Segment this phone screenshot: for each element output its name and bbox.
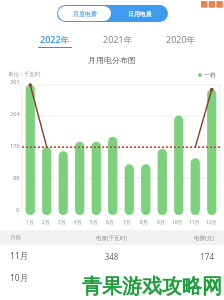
staticText [73, 273, 150, 284]
staticText: 单位：千瓦时 [8, 71, 41, 78]
button[interactable]: 10月 [0, 267, 224, 289]
staticText: 2月 [42, 219, 50, 226]
staticText: 青果游戏攻略网 [82, 274, 222, 299]
staticText: 11月 [189, 219, 200, 226]
staticText [150, 273, 214, 284]
staticText: 5月 [90, 219, 98, 226]
staticText: 2020年 [166, 33, 196, 45]
staticText: 电费(元) [150, 234, 214, 242]
staticText: 8月 [140, 219, 148, 226]
staticText: 0 [16, 206, 20, 214]
staticText: 12月 [206, 219, 217, 226]
staticText: 一档 [204, 71, 216, 78]
button[interactable]: 2022年 [24, 31, 86, 48]
staticText: 9月 [157, 219, 165, 226]
staticText: 7月 [123, 219, 131, 226]
staticText: 10月 [10, 272, 73, 284]
button[interactable]: 月度电费 [58, 6, 111, 21]
staticText: 月度电费 [73, 10, 97, 18]
staticText: 4月 [74, 219, 82, 226]
staticText: 2022年 [40, 33, 70, 45]
staticText: 1月 [26, 219, 34, 226]
button[interactable]: 日用电量 [112, 5, 168, 22]
staticText: 174 [150, 251, 214, 262]
staticText: 月份 [10, 234, 73, 241]
staticText: 361 [10, 78, 20, 86]
staticText: 6月 [106, 219, 114, 226]
staticText: 电量(千瓦时) [73, 234, 150, 242]
staticText: 264 [10, 110, 20, 118]
staticText: 月用电分布图 [88, 55, 136, 65]
staticText: 2021年 [103, 33, 133, 45]
staticText: 348 [73, 251, 150, 262]
staticText: 11月 [10, 250, 73, 262]
button[interactable]: 2021年 [86, 31, 149, 48]
button[interactable]: 2020年 [149, 31, 212, 48]
staticText: 日用电量 [128, 10, 152, 18]
button[interactable]: Logo [200, 0, 222, 11]
staticText: 88 [13, 174, 20, 182]
staticText: 176 [10, 142, 20, 150]
staticText: 3月 [58, 219, 66, 226]
staticText: 10月 [172, 219, 183, 226]
button[interactable]: 一档 [198, 71, 216, 78]
button[interactable]: 11月 [0, 245, 224, 267]
